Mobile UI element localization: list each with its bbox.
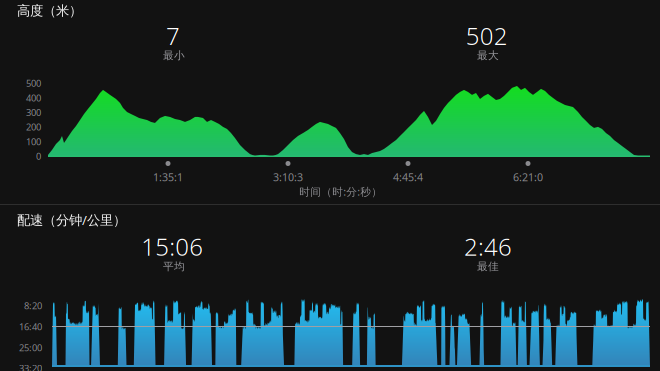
- staticText: 1:35:1: [153, 170, 183, 184]
- staticText: 33:20: [19, 362, 42, 371]
- staticText: 15:06: [141, 230, 203, 262]
- staticText: 平均: [163, 260, 185, 273]
- staticText: 最大: [477, 49, 499, 62]
- staticText: 25:00: [19, 341, 42, 354]
- staticText: 200: [26, 121, 41, 133]
- staticText: 300: [26, 106, 41, 119]
- staticText: 502: [466, 20, 508, 52]
- staticText: 500: [26, 77, 41, 89]
- staticText: 时间（时:分:秒）: [299, 184, 382, 199]
- staticText: 最小: [163, 49, 185, 62]
- staticText: 最佳: [477, 260, 499, 273]
- staticText: 4:45:4: [393, 170, 423, 184]
- staticText: 配速（分钟/公里）: [17, 211, 126, 229]
- staticText: 0: [36, 150, 41, 162]
- staticText: 高度（米）: [17, 2, 82, 19]
- staticText: 8:20: [24, 299, 42, 312]
- staticText: 16:40: [19, 320, 42, 333]
- staticText: 400: [26, 92, 41, 104]
- staticText: 2:46: [464, 230, 512, 262]
- staticText: 100: [26, 135, 41, 148]
- staticText: 3:10:3: [273, 170, 303, 184]
- staticText: 7: [166, 20, 180, 52]
- staticText: 6:21:0: [513, 170, 543, 184]
